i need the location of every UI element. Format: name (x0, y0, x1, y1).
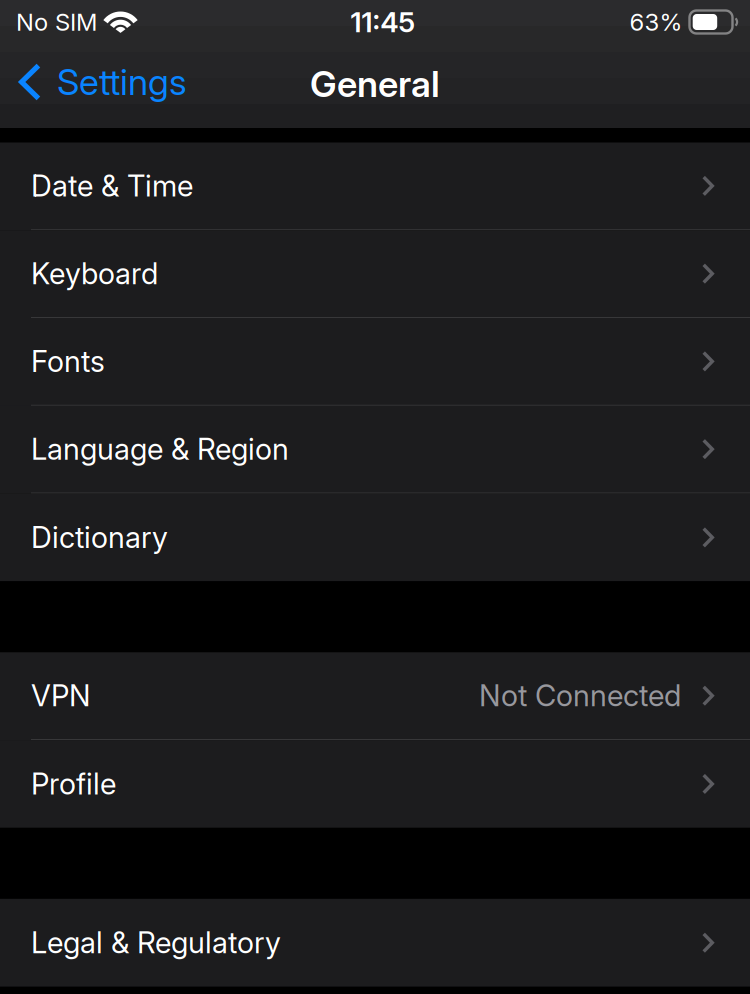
staticText: General (310, 62, 440, 106)
staticText: 63% (629, 7, 682, 36)
staticText: Not Connected (479, 678, 681, 713)
button[interactable]: Keyboard (0, 230, 750, 318)
button[interactable]: Fonts (0, 318, 750, 406)
button[interactable]: Settings (0, 56, 199, 116)
button[interactable]: Dictionary (0, 493, 750, 581)
button[interactable]: VPN (0, 652, 750, 740)
staticText: No SIM (16, 7, 97, 36)
staticText: Profile (31, 766, 116, 802)
staticText: VPN (31, 678, 91, 713)
staticText: Fonts (31, 344, 105, 379)
staticText: Legal & Regulatory (31, 925, 281, 960)
staticText: Keyboard (31, 256, 158, 291)
button[interactable]: Language & Region (0, 406, 750, 494)
button[interactable]: Profile (0, 740, 750, 828)
button[interactable]: Legal & Regulatory (0, 899, 750, 987)
button[interactable]: Date & Time (0, 142, 750, 230)
staticText: Dictionary (31, 520, 168, 555)
staticText: 11:45 (350, 5, 415, 39)
staticText: Settings (57, 60, 187, 104)
staticText: Language & Region (31, 431, 289, 467)
staticText: Date & Time (31, 168, 193, 204)
